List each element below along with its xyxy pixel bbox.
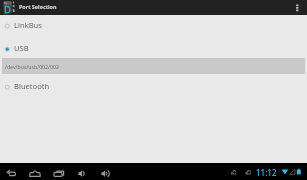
staticText: Port Selection	[19, 3, 57, 10]
button[interactable]: Recent apps	[47, 163, 71, 180]
button[interactable]: USB	[0, 43, 307, 55]
staticText: USB	[14, 43, 29, 53]
staticText: /dev/bus/usb/002/002	[5, 63, 59, 70]
button[interactable]: Bluetooth	[0, 81, 307, 93]
staticText: LinkBus	[14, 20, 42, 30]
staticText: Bluetooth	[14, 81, 50, 91]
button[interactable]: Back	[0, 163, 24, 180]
button[interactable]: App icon, navigate up	[3, 0, 18, 15]
button[interactable]: Volume down	[71, 163, 95, 180]
button[interactable]: More options	[291, 0, 304, 15]
button[interactable]: LinkBus	[0, 20, 307, 32]
button[interactable]: /dev/bus/usb/002/002	[2, 58, 305, 74]
button[interactable]: Volume up	[94, 163, 118, 180]
staticText: 11:12	[256, 167, 277, 178]
button[interactable]: Home	[23, 163, 47, 180]
